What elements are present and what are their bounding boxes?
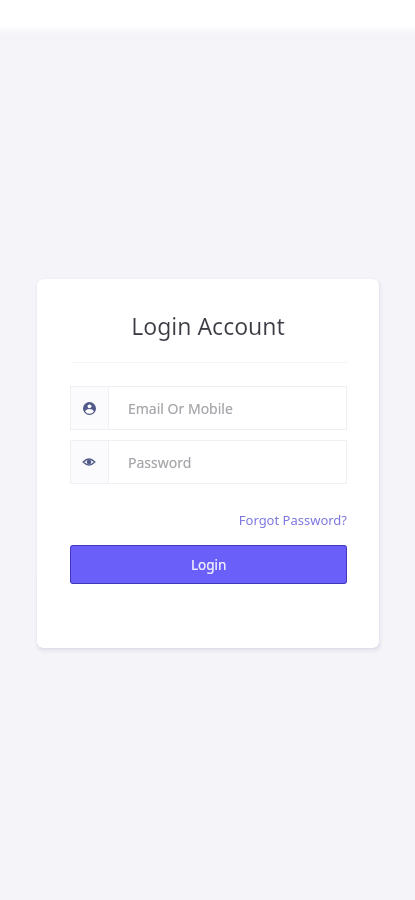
button[interactable]: Login <box>70 545 347 584</box>
staticText: Password <box>128 453 192 472</box>
button[interactable]: Toggle password visibility <box>70 440 347 484</box>
button[interactable]: Account <box>70 386 347 430</box>
staticText: Email Or Mobile <box>128 399 233 418</box>
button[interactable]: Account <box>70 386 108 430</box>
staticText: Login Account <box>131 310 285 341</box>
other: Account <box>83 402 96 415</box>
staticText: Forgot Password? <box>238 511 347 529</box>
button[interactable]: Toggle password visibility <box>70 440 108 484</box>
staticText: Login <box>191 556 227 574</box>
other: Show password <box>82 455 96 469</box>
button[interactable]: Forgot Password? <box>238 510 347 530</box>
